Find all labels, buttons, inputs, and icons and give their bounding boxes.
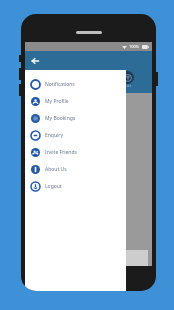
staticText: My Profile bbox=[45, 98, 69, 105]
staticText: Cart bbox=[125, 84, 131, 88]
staticText: tells us bbox=[29, 155, 44, 161]
button[interactable]: Back bbox=[28, 54, 41, 67]
button[interactable]: My Profile bbox=[25, 93, 126, 110]
button[interactable]: Logout bbox=[25, 178, 126, 195]
staticText: a taxi. bbox=[29, 173, 42, 179]
staticText: y to begin bbox=[29, 167, 50, 173]
staticText: Logout bbox=[45, 183, 62, 190]
staticText: My Bookings bbox=[45, 115, 76, 122]
staticText: Invite Friends bbox=[45, 149, 77, 156]
staticText: address bbox=[29, 112, 46, 118]
staticText: major bbox=[29, 141, 53, 152]
staticText: Notifications bbox=[45, 81, 75, 88]
button[interactable]: Cart bbox=[121, 71, 134, 88]
staticText: 100% bbox=[129, 44, 140, 49]
staticText: Enquiry bbox=[45, 132, 63, 139]
button[interactable]: My Bookings bbox=[25, 110, 126, 127]
staticText: About Us bbox=[45, 166, 67, 173]
staticText: reserving bbox=[29, 118, 49, 124]
button[interactable]: Notifications bbox=[25, 76, 126, 93]
button[interactable]: Enquiry bbox=[25, 127, 126, 144]
staticText: Booking in bbox=[29, 97, 72, 108]
staticText: need bbox=[29, 161, 40, 167]
staticText: a taxi. bbox=[29, 130, 42, 136]
staticText: 7 bbox=[36, 187, 42, 199]
button[interactable]: About Us bbox=[25, 161, 126, 178]
button[interactable]: Invite Friends bbox=[25, 144, 126, 161]
